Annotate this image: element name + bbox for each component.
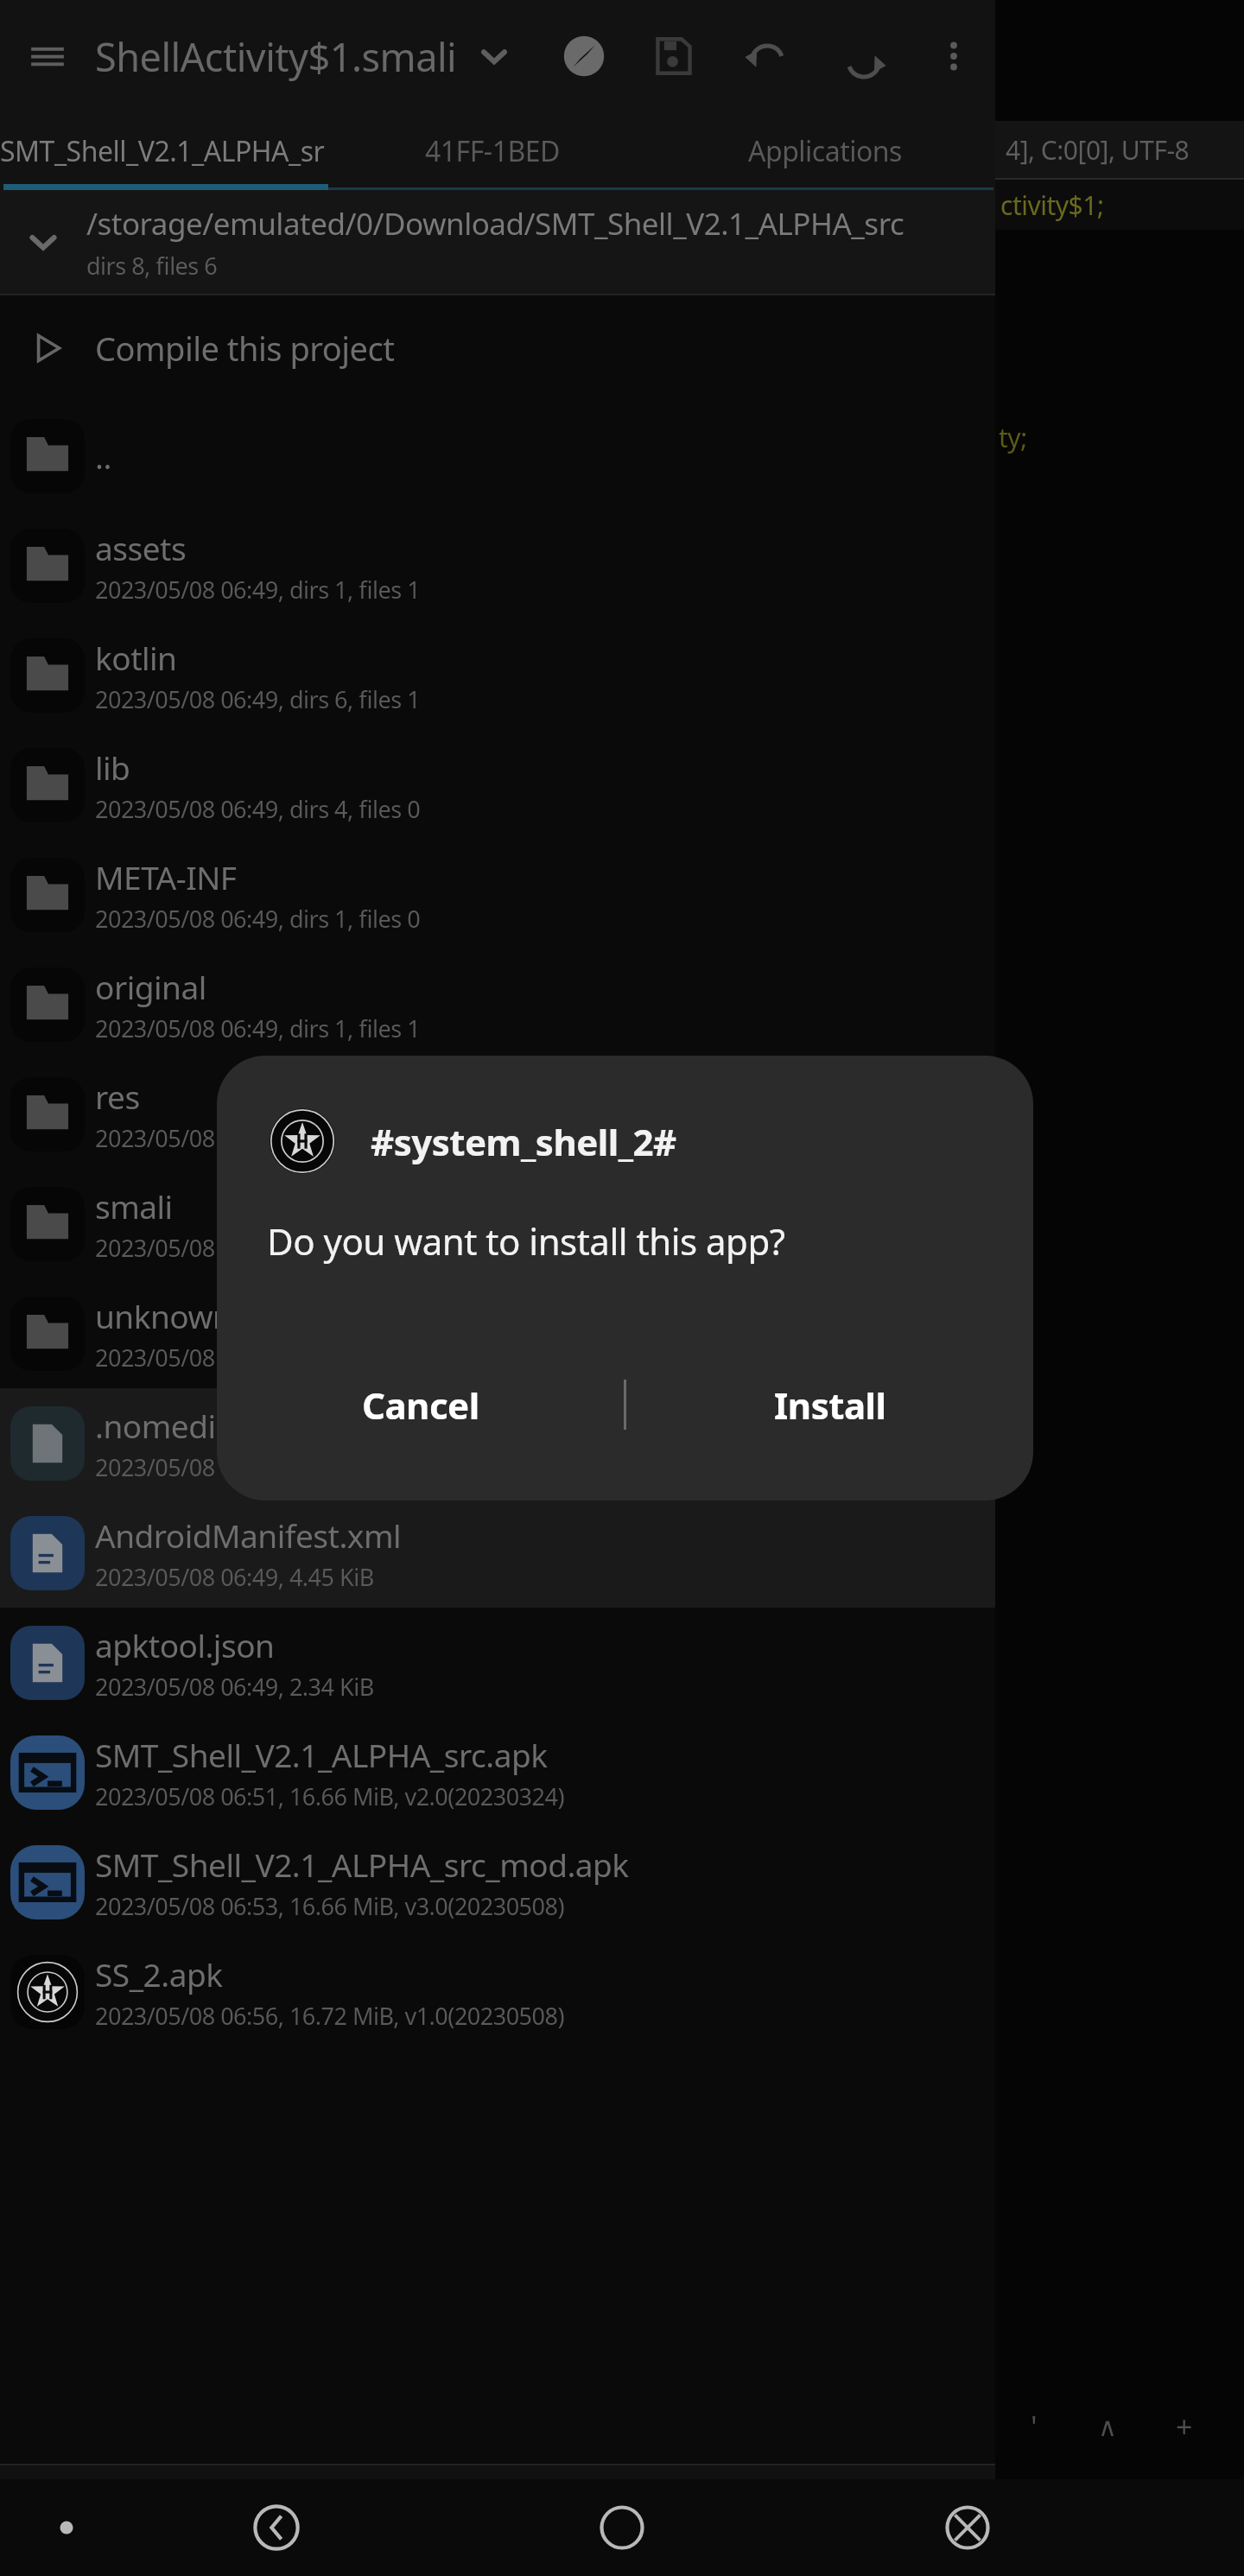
- button[interactable]: Applications: [657, 112, 993, 190]
- staticText: ∧: [1098, 2412, 1117, 2442]
- staticText: apktool.json: [95, 1623, 275, 1666]
- staticText: 2023/05/08 06:49, dirs 6, files 1: [95, 683, 421, 715]
- staticText: Applications: [748, 132, 902, 170]
- button[interactable]: Redo: [816, 0, 912, 112]
- button[interactable]: 41FF-1BED: [328, 112, 657, 190]
- staticText: SMT_Shell_V2.1_ALPHA_src: [0, 132, 328, 170]
- button[interactable]: Menu: [0, 0, 95, 112]
- staticText: 2023/05/08 06:53, 16.66 MiB, v3.0(202305…: [95, 1890, 565, 1922]
- button[interactable]: /storage/emulated/0/Download/SMT_Shell_V…: [0, 190, 995, 294]
- button[interactable]: META-INF: [0, 840, 995, 949]
- staticText: AndroidManifest.xml: [95, 1513, 402, 1557]
- staticText: ctivity$1;: [1000, 187, 1104, 223]
- button[interactable]: SMT_Shell_V2.1_ALPHA_src: [0, 112, 328, 190]
- button[interactable]: .nomedia: [0, 1388, 995, 1498]
- staticText: 2023/05/08 06:51, 16.66 MiB, v2.0(202303…: [95, 1780, 565, 1812]
- button[interactable]: Undo: [719, 0, 816, 112]
- staticText: META-INF: [95, 855, 237, 898]
- staticText: smali: [95, 1184, 173, 1228]
- staticText: dirs 8, files 6: [86, 250, 218, 282]
- button[interactable]: More options: [912, 0, 995, 112]
- button[interactable]: Home: [553, 2479, 691, 2576]
- staticText: 2023/05/08 06:49, dirs 1, files 0: [95, 1122, 421, 1154]
- staticText: 2023/05/08 06:49, 2.34 KiB: [95, 1671, 374, 1703]
- button[interactable]: Back: [207, 2479, 346, 2576]
- staticText: ': [1031, 2407, 1038, 2446]
- button[interactable]: Search: [207, 2465, 415, 2576]
- staticText: 2023/05/08 06:49, dirs 1, files 1: [95, 574, 421, 606]
- staticText: ShellActivity$1.smali: [95, 30, 457, 83]
- staticText: ..: [95, 435, 111, 478]
- staticText: 2023/05/08 06:49, dirs 1, files 1: [95, 1012, 421, 1044]
- staticText: 2023/05/08 06:49, 4.45 KiB: [95, 1561, 374, 1593]
- staticText: unknown: [95, 1294, 232, 1337]
- staticText: original: [95, 965, 206, 1008]
- button[interactable]: SMT_Shell_V2.1_ALPHA_src.apk: [0, 1717, 995, 1827]
- button[interactable]: Open: [829, 2465, 995, 2576]
- staticText: lib: [95, 746, 130, 789]
- staticText: 2023/05/08 06:49, dirs 1, files 0: [95, 1342, 421, 1374]
- button[interactable]: Cancel: [217, 1348, 624, 1461]
- staticText: 41FF-1BED: [425, 132, 560, 170]
- staticText: assets: [95, 526, 187, 569]
- staticText: #system_shell_2#: [371, 1117, 676, 1166]
- staticText: 2023/05/08 06:49, 0 B: [95, 1451, 323, 1483]
- staticText: res: [95, 1075, 140, 1118]
- button[interactable]: Add: [415, 2465, 622, 2576]
- staticText: 2023/05/08 06:49, dirs 1, files 1: [95, 1232, 421, 1264]
- staticText: 2023/05/08 06:56, 16.72 MiB, v1.0(202305…: [95, 2000, 565, 2032]
- button[interactable]: Compile this project: [0, 295, 995, 401]
- button[interactable]: kotlin: [0, 620, 995, 730]
- button[interactable]: SS_2.apk: [0, 1937, 995, 2046]
- button[interactable]: SMT_Shell_V2.1_ALPHA_src_mod.apk: [0, 1827, 995, 1937]
- button[interactable]: assets: [0, 511, 995, 620]
- staticText: 4], C:0[0], UTF-8: [1006, 132, 1190, 168]
- staticText: Cancel: [362, 1380, 479, 1430]
- staticText: 2023/05/08 06:49, dirs 1, files 0: [95, 903, 421, 935]
- button[interactable]: Recents: [898, 2479, 1037, 2576]
- staticText: +: [1176, 2407, 1192, 2446]
- staticText: Compile this project: [95, 326, 395, 371]
- button[interactable]: AndroidManifest.xml: [0, 1498, 995, 1608]
- staticText: SS_2.apk: [95, 1952, 223, 1995]
- button[interactable]: res: [0, 1059, 995, 1169]
- staticText: SMT_Shell_V2.1_ALPHA_src.apk: [95, 1733, 548, 1776]
- button[interactable]: Install: [626, 1348, 1033, 1461]
- staticText: 2023/05/08 06:49, dirs 4, files 0: [95, 793, 421, 825]
- button[interactable]: original: [0, 949, 995, 1059]
- staticText: Do you want to install this app?: [267, 1216, 785, 1266]
- staticText: ty;: [999, 420, 1027, 455]
- button[interactable]: Save: [629, 0, 719, 112]
- button[interactable]: ..: [0, 401, 995, 511]
- staticText: kotlin: [95, 636, 177, 679]
- staticText: /storage/emulated/0/Download/SMT_Shell_V…: [86, 203, 904, 244]
- button[interactable]: Navigate: [539, 0, 629, 112]
- button[interactable]: smali: [0, 1169, 995, 1278]
- button[interactable]: unknown: [0, 1278, 995, 1388]
- staticText: SMT_Shell_V2.1_ALPHA_src_mod.apk: [95, 1843, 629, 1886]
- button[interactable]: lib: [0, 730, 995, 840]
- button[interactable]: Swap: [622, 2465, 829, 2576]
- staticText: .nomedia: [95, 1404, 233, 1447]
- button[interactable]: apktool.json: [0, 1608, 995, 1717]
- staticText: Install: [774, 1380, 886, 1430]
- button[interactable]: Expand: [471, 33, 517, 79]
- button[interactable]: Bookmark: [0, 2465, 207, 2576]
